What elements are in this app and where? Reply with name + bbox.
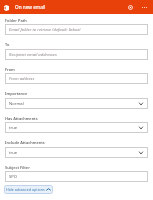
button[interactable]: SPO (5, 171, 148, 182)
staticText: Normal (9, 101, 24, 107)
staticText: Include Attachments (5, 140, 45, 145)
button[interactable]: Normal (5, 98, 148, 109)
staticText: Folder Path (5, 18, 27, 23)
button[interactable]: true (5, 147, 148, 158)
button[interactable]: Email folder to retrieve (default: Inbox… (5, 24, 148, 35)
staticText: SPO (9, 174, 18, 180)
staticText: Has Attachments (5, 116, 38, 121)
staticText: Email folder to retrieve (default: Inbox… (9, 27, 81, 33)
button[interactable]: Hide advanced options (4, 185, 53, 194)
staticText: true (9, 125, 18, 131)
staticText: Importance (5, 91, 28, 96)
button[interactable]: Office (4, 5, 9, 11)
staticText: Subject Filter (5, 165, 30, 170)
button[interactable]: Help (126, 3, 135, 12)
button[interactable]: Recipient email addresses (5, 49, 148, 60)
staticText: From (5, 67, 15, 72)
button[interactable]: More options (140, 3, 149, 12)
staticText: Recipient email addresses (9, 52, 57, 58)
staticText: From address (9, 76, 35, 82)
button[interactable]: true (5, 122, 148, 133)
staticText: true (9, 150, 18, 156)
staticText: On new email (15, 4, 46, 10)
staticText: To (5, 42, 10, 47)
staticText: Hide advanced options (6, 187, 45, 192)
button[interactable]: From address (5, 73, 148, 84)
